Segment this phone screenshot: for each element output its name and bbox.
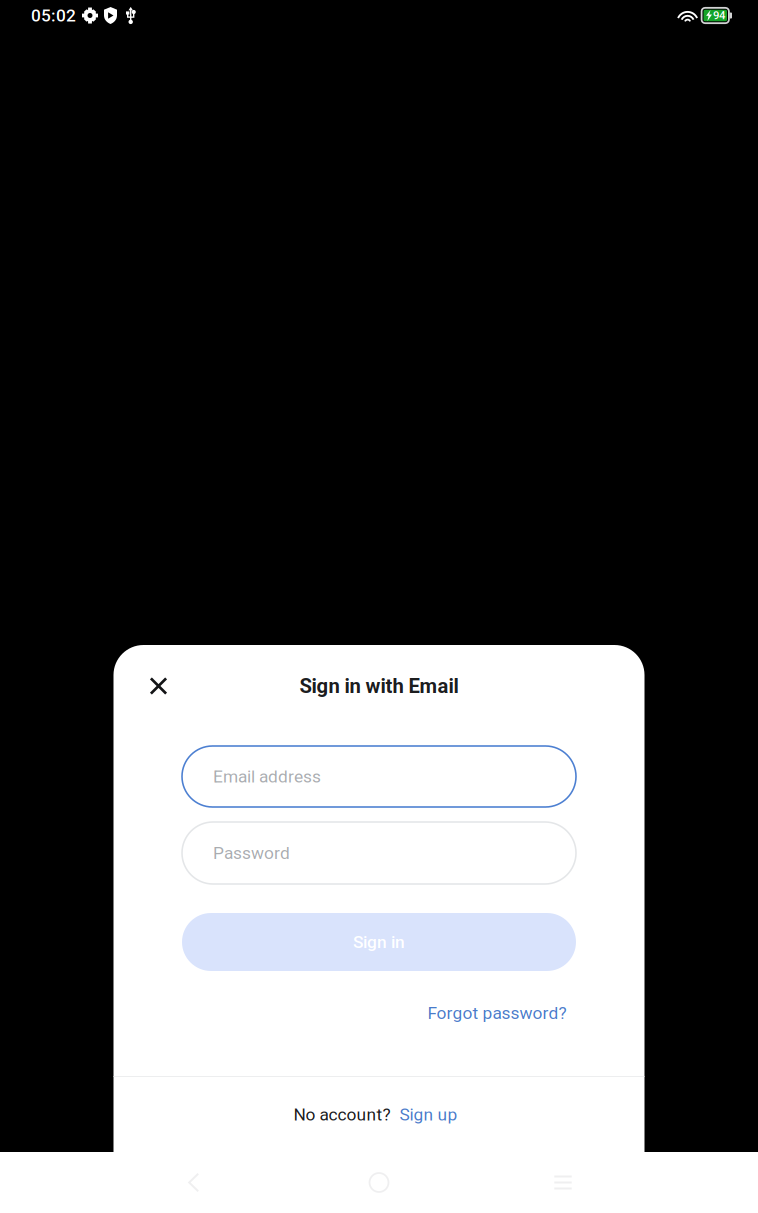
staticText: Sign up [399, 1104, 457, 1125]
button[interactable]: Sign up [399, 1104, 457, 1125]
staticText: 94 [713, 9, 725, 22]
staticText: Password [213, 843, 290, 863]
staticText: No account? [293, 1104, 390, 1125]
staticText: Sign in with Email [299, 674, 458, 698]
button[interactable]: Forgot password? [191, 971, 566, 1034]
button[interactable]: Sign in [182, 913, 576, 971]
staticText: Email address [213, 766, 321, 787]
button[interactable]: Close [134, 662, 182, 710]
staticText: Sign in [353, 932, 405, 952]
staticText: 05:02 [31, 5, 76, 26]
staticText: Forgot password? [427, 1003, 566, 1023]
